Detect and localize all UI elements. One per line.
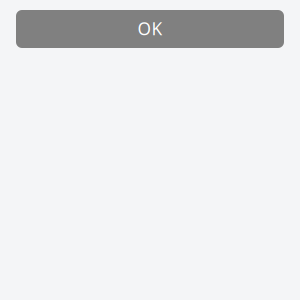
button[interactable]: OK [16,10,284,48]
staticText: OK [137,17,162,40]
